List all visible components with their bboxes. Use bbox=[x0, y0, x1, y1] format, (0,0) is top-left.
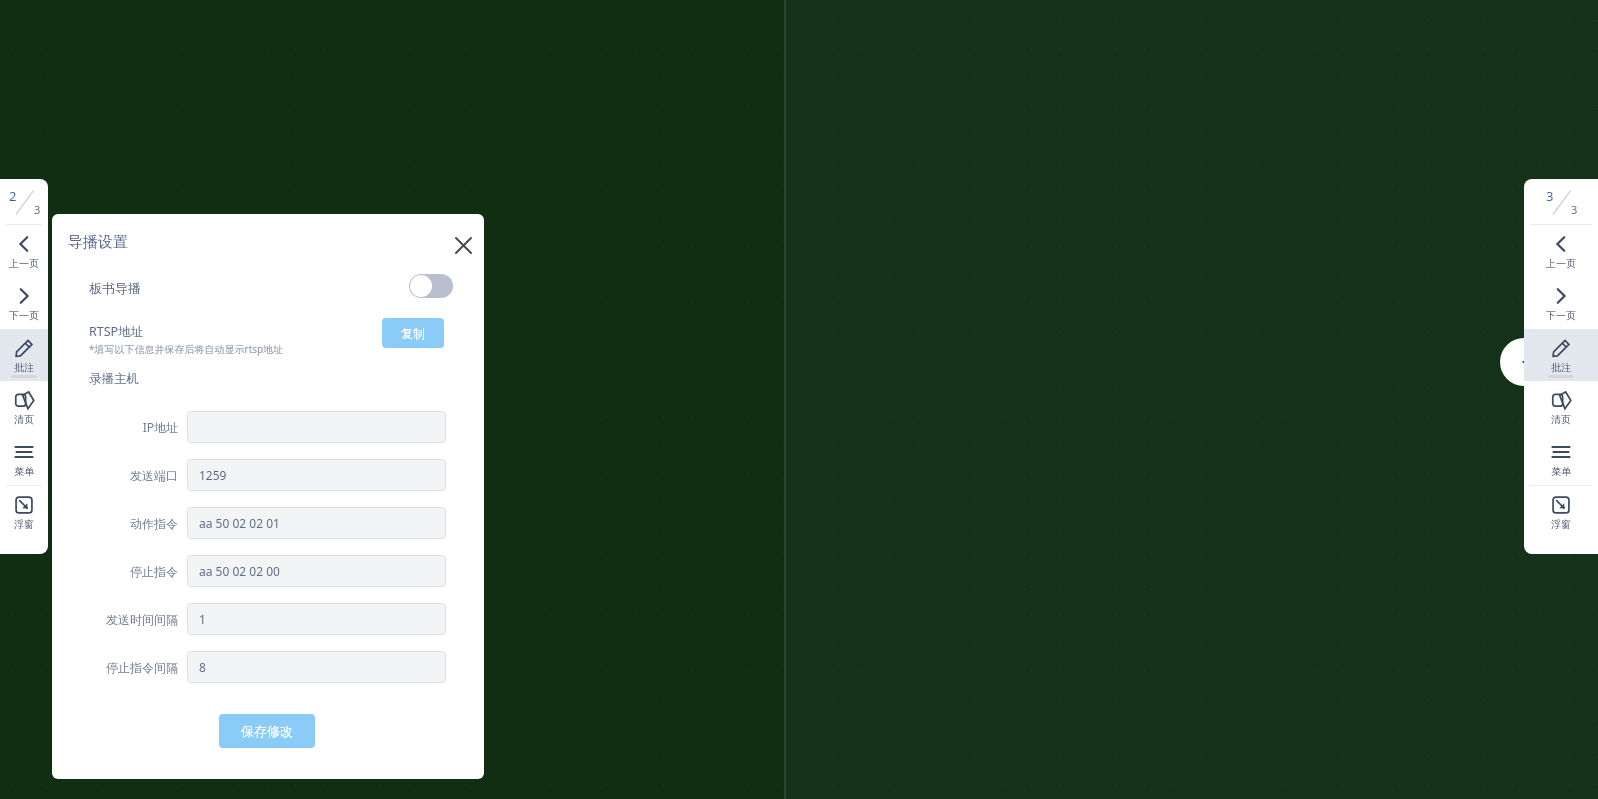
button[interactable]: 批注 bbox=[0, 329, 48, 381]
staticText: RTSP地址 bbox=[89, 323, 144, 340]
button[interactable]: 8 bbox=[187, 651, 446, 683]
button[interactable] bbox=[187, 411, 446, 443]
staticText: 3 bbox=[1571, 202, 1578, 217]
button[interactable]: aa 50 02 02 01 bbox=[187, 507, 446, 539]
button[interactable]: 下一页 bbox=[0, 277, 48, 329]
staticText: 发送端口 bbox=[130, 468, 178, 483]
staticText: 动作指令 bbox=[130, 516, 178, 531]
staticText: 1259 bbox=[199, 467, 227, 483]
button[interactable]: 浮窗 bbox=[1524, 486, 1598, 538]
button[interactable]: 2 bbox=[0, 179, 48, 224]
staticText: 菜单 bbox=[1551, 465, 1571, 478]
button[interactable]: 菜单 bbox=[0, 433, 48, 485]
button[interactable]: 保存修改 bbox=[219, 714, 315, 748]
staticText: 3 bbox=[1546, 187, 1554, 205]
staticText: 保存修改 bbox=[241, 723, 293, 739]
button[interactable]: 菜单 bbox=[1524, 433, 1598, 485]
button[interactable]: 浮窗 bbox=[0, 486, 48, 538]
button[interactable]: aa 50 02 02 00 bbox=[187, 555, 446, 587]
staticText: 下一页 bbox=[1546, 309, 1576, 322]
staticText: 下一页 bbox=[9, 309, 39, 322]
staticText: 板书导播 bbox=[89, 280, 141, 296]
staticText: 清页 bbox=[14, 413, 34, 426]
staticText: aa 50 02 02 01 bbox=[199, 515, 280, 531]
staticText: 菜单 bbox=[14, 465, 34, 478]
staticText: 批注 bbox=[14, 361, 34, 374]
button[interactable]: 复制 bbox=[382, 318, 444, 348]
button[interactable]: 批注 bbox=[1524, 329, 1598, 381]
button[interactable]: 清页 bbox=[1524, 381, 1598, 433]
staticText: 8 bbox=[199, 659, 206, 675]
staticText: 清页 bbox=[1551, 413, 1571, 426]
staticText: 3 bbox=[34, 202, 41, 217]
staticText: 导播设置 bbox=[68, 233, 128, 252]
button[interactable]: Collapse panel bbox=[1500, 338, 1548, 386]
button[interactable]: 1259 bbox=[187, 459, 446, 491]
staticText: 浮窗 bbox=[14, 518, 34, 531]
button[interactable]: 下一页 bbox=[1524, 277, 1598, 329]
staticText: IP地址 bbox=[142, 419, 178, 435]
staticText: 停止指令 bbox=[130, 564, 178, 579]
staticText: 复制 bbox=[401, 326, 425, 341]
staticText: 浮窗 bbox=[1551, 518, 1571, 531]
button[interactable]: 清页 bbox=[0, 381, 48, 433]
button[interactable]: 上一页 bbox=[0, 225, 48, 277]
staticText: 上一页 bbox=[9, 257, 39, 270]
staticText: 发送时间间隔 bbox=[106, 612, 178, 627]
button[interactable]: Close bbox=[445, 227, 481, 263]
button[interactable]: 1 bbox=[187, 603, 446, 635]
staticText: 1 bbox=[199, 611, 206, 627]
staticText: aa 50 02 02 00 bbox=[199, 563, 280, 579]
button[interactable]: 3 bbox=[1524, 179, 1598, 224]
button[interactable]: 上一页 bbox=[1524, 225, 1598, 277]
staticText: 录播主机 bbox=[89, 371, 139, 387]
staticText: *填写以下信息并保存后将自动显示rtsp地址 bbox=[89, 342, 284, 356]
button[interactable]: 板书导播 toggle bbox=[409, 274, 453, 298]
staticText: 停止指令间隔 bbox=[106, 660, 178, 675]
staticText: 批注 bbox=[1551, 361, 1571, 374]
staticText: 上一页 bbox=[1546, 257, 1576, 270]
staticText: 2 bbox=[9, 187, 17, 205]
